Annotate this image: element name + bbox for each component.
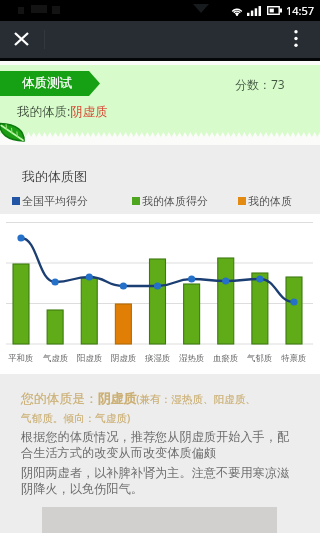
staticText: 体质测试 bbox=[22, 75, 72, 91]
staticText: 气虚质 bbox=[43, 353, 69, 364]
staticText: 阴虚质 bbox=[111, 353, 137, 364]
staticText: 分数：73 bbox=[235, 76, 285, 92]
staticText: 气郁质 bbox=[247, 353, 273, 364]
staticText: 根据您的体质情况，推荐您从阴虚质开始入手，配 合生活方式的改变从而改变体质偏颇 bbox=[21, 429, 290, 461]
staticText: 特禀质 bbox=[281, 353, 307, 364]
staticText: 您的体质是：阴虚质(兼有：湿热质、阳虚质、 气郁质。倾向：气虚质) bbox=[21, 391, 256, 425]
button[interactable]: Close bbox=[6, 23, 37, 54]
staticText: 阳虚质 bbox=[77, 353, 103, 364]
staticText: 我的体质图 bbox=[22, 168, 87, 184]
staticText: 我的体质:阴虚质 bbox=[17, 103, 108, 120]
staticText: 血瘀质 bbox=[213, 353, 239, 364]
staticText: 阴阳两虚者，以补脾补肾为主。注意不要用寒凉滋 阴降火，以免伤阳气。 bbox=[21, 465, 290, 497]
staticText: 我的体质 bbox=[248, 194, 292, 208]
staticText: 湿热质 bbox=[179, 353, 205, 364]
staticText: 我的体质得分 bbox=[142, 194, 208, 208]
staticText: 14:57 bbox=[286, 3, 315, 18]
button[interactable]: More options bbox=[280, 23, 311, 54]
staticText: 平和质 bbox=[8, 353, 34, 364]
staticText: 全国平均得分 bbox=[22, 194, 88, 208]
staticText: 痰湿质 bbox=[145, 353, 171, 364]
